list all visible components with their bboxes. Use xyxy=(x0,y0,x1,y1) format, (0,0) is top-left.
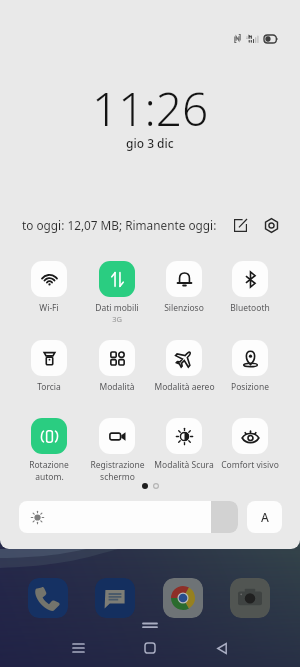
staticText: schermo xyxy=(100,471,135,483)
staticText: Wi-Fi xyxy=(39,302,59,314)
button[interactable]: Modalità xyxy=(83,340,151,393)
button[interactable]: Home xyxy=(132,630,168,666)
button[interactable]: Indietro xyxy=(204,630,240,666)
staticText: Comfort visivo xyxy=(221,459,279,471)
button[interactable]: Wi-Fi xyxy=(15,261,83,314)
staticText: Bluetooth xyxy=(230,302,270,314)
button[interactable]: Comfort visivo xyxy=(216,418,284,471)
staticText: Dati mobili xyxy=(95,302,139,314)
staticText: Modalità aereo xyxy=(154,381,215,393)
button[interactable]: msg xyxy=(95,578,135,618)
button[interactable]: cam xyxy=(230,578,270,618)
button[interactable]: Modifica xyxy=(228,213,252,237)
staticText: Torcia xyxy=(37,381,61,393)
button[interactable]: chrome xyxy=(163,578,203,618)
button[interactable]: Registrazione xyxy=(83,418,151,483)
staticText: to oggi: 12,07 MB; Rimanente oggi: xyxy=(22,217,217,233)
staticText: 3G xyxy=(112,314,122,324)
staticText: Modalità Scura xyxy=(154,459,214,471)
button[interactable]: phone xyxy=(28,578,68,618)
staticText: A xyxy=(261,509,269,525)
button[interactable]: Bluetooth xyxy=(216,261,284,314)
button[interactable]: Dati mobili xyxy=(83,261,151,324)
button[interactable]: Impostazioni xyxy=(259,213,283,237)
button[interactable]: Recenti xyxy=(60,630,96,666)
button[interactable]: Silenzioso xyxy=(150,261,218,314)
staticText: autom. xyxy=(35,471,64,483)
staticText: 11:26 xyxy=(92,77,209,140)
staticText: Posizione xyxy=(231,381,269,393)
button[interactable]: Torcia xyxy=(15,340,83,393)
button[interactable]: Luminosità xyxy=(19,501,238,533)
staticText: Modalità xyxy=(99,381,135,393)
staticText: Registrazione xyxy=(90,459,145,471)
staticText: Silenzioso xyxy=(164,302,204,314)
staticText: gio 3 dic xyxy=(126,135,174,151)
button[interactable]: Luminosità automatica xyxy=(247,501,282,533)
staticText: Rotazione xyxy=(29,459,69,471)
button[interactable]: Modalità Scura xyxy=(150,418,218,471)
button[interactable]: Posizione xyxy=(216,340,284,393)
button[interactable]: Modalità aereo xyxy=(150,340,218,393)
button[interactable]: Rotazione xyxy=(15,418,83,483)
